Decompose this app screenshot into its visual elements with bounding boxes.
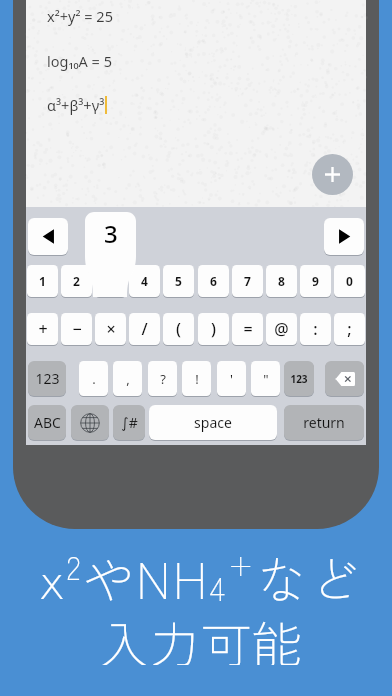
button[interactable] — [71, 405, 109, 440]
staticText: 7 — [244, 273, 251, 289]
staticText: ABC — [34, 413, 61, 432]
staticText: 1 — [39, 273, 46, 289]
button[interactable]: 5 — [163, 265, 194, 297]
button[interactable]: × — [95, 313, 126, 345]
staticText: ; — [347, 318, 352, 340]
button[interactable]: ( — [163, 313, 194, 345]
staticText: . — [92, 370, 96, 388]
button[interactable]: 2 — [61, 265, 92, 297]
button[interactable]: 8 — [266, 265, 297, 297]
staticText: : — [313, 318, 318, 340]
button[interactable]: space — [149, 405, 277, 440]
button[interactable] — [28, 218, 68, 255]
button[interactable]: 7 — [232, 265, 263, 297]
staticText: 4 — [141, 273, 148, 289]
button[interactable]: = — [232, 313, 263, 345]
button[interactable]: : — [300, 313, 331, 345]
button[interactable]: ? — [148, 361, 177, 396]
button[interactable]: 6 — [198, 265, 229, 297]
staticText: ) — [211, 318, 216, 340]
button[interactable]: 123 — [28, 361, 66, 396]
staticText: / — [141, 318, 148, 340]
staticText: " — [263, 370, 269, 388]
staticText: 6 — [210, 273, 217, 289]
button[interactable] — [325, 361, 364, 396]
staticText: , — [126, 370, 130, 388]
staticText: 3 — [104, 217, 118, 250]
staticText: ∫# — [121, 413, 138, 432]
staticText: = — [243, 318, 253, 340]
button[interactable]: @ — [266, 313, 297, 345]
staticText: ? — [160, 370, 166, 388]
button[interactable]: / — [129, 313, 160, 345]
button[interactable]: . — [79, 361, 108, 396]
staticText: 5 — [175, 273, 182, 289]
button[interactable] — [324, 218, 364, 255]
staticText: − — [72, 318, 82, 340]
staticText: × — [106, 318, 116, 340]
staticText: + — [38, 318, 48, 340]
staticText: x²+y² = 25 — [47, 6, 113, 26]
button[interactable]: return — [284, 405, 364, 440]
staticText: 8 — [278, 273, 285, 289]
button[interactable]: 123 — [284, 361, 314, 396]
button[interactable]: ; — [334, 313, 365, 345]
button[interactable]: 4 — [129, 265, 160, 297]
button[interactable]: 0 — [334, 265, 365, 297]
staticText: 9 — [312, 273, 319, 289]
button[interactable]: ABC — [28, 405, 66, 440]
staticText: ( — [176, 318, 181, 340]
button[interactable]: " — [251, 361, 280, 396]
button[interactable]: ∫# — [113, 405, 145, 440]
button[interactable]: 9 — [300, 265, 331, 297]
staticText: α³+β³+γ³ — [47, 95, 105, 115]
staticText: @ — [274, 318, 289, 340]
button[interactable]: ' — [217, 361, 246, 396]
staticText: ' — [230, 370, 233, 388]
staticText: 入力可能 — [98, 605, 303, 665]
staticText: log₁₀A = 5 — [47, 51, 112, 71]
staticText: 2 — [73, 273, 80, 289]
staticText: 123 — [35, 369, 60, 388]
button[interactable]: − — [61, 313, 92, 345]
staticText: return — [303, 413, 345, 432]
staticText: space — [194, 413, 232, 432]
button[interactable]: ! — [182, 361, 211, 396]
staticText: x2やNH4+など — [39, 540, 363, 614]
button[interactable]: , — [113, 361, 142, 396]
staticText: 0 — [346, 273, 353, 289]
button[interactable]: ) — [198, 313, 229, 345]
button[interactable]: Add — [312, 154, 353, 195]
button[interactable]: 1 — [27, 265, 58, 297]
staticText: 123 — [290, 372, 308, 386]
button[interactable]: + — [27, 313, 58, 345]
staticText: ! — [195, 370, 199, 388]
